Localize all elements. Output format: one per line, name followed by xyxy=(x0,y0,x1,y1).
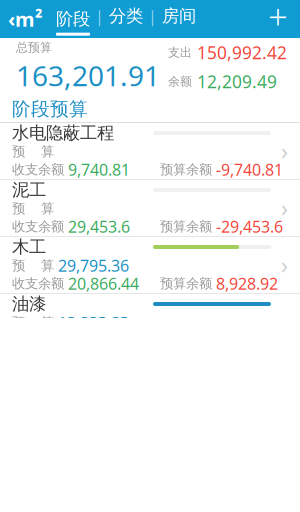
staticText: 预算余额 xyxy=(160,275,212,292)
button[interactable]: 房间 xyxy=(157,5,201,33)
staticText: 预 算 xyxy=(12,143,54,160)
staticText: 预 算 xyxy=(12,200,54,217)
staticText: 9,740.81 xyxy=(64,159,130,180)
staticText: 12,209.49 xyxy=(197,70,277,93)
staticText: 150,992.42 xyxy=(197,41,287,64)
staticText: 收支余额 xyxy=(12,275,64,292)
staticText: 收支余额 xyxy=(12,218,64,235)
staticText: 163,201.91 xyxy=(16,57,160,94)
staticText: › xyxy=(281,193,288,223)
staticText: 分类 xyxy=(109,5,143,27)
staticText: 余额 xyxy=(168,74,192,89)
staticText: 8,928.92 xyxy=(212,273,278,294)
staticText: -9,740.81 xyxy=(212,159,283,180)
button[interactable]: › xyxy=(0,123,300,180)
button[interactable]: 阶段 xyxy=(51,2,95,36)
button[interactable]: Add xyxy=(268,0,300,45)
staticText: 12,823.83 xyxy=(54,312,129,333)
staticText: 油漆 xyxy=(12,293,46,315)
staticText: ‹m² xyxy=(8,6,43,32)
staticText: 20,866.44 xyxy=(64,273,139,294)
staticText: 泥工 xyxy=(12,179,46,201)
staticText: 预算余额 xyxy=(160,161,212,178)
staticText: 木工 xyxy=(12,236,46,258)
button[interactable]: Back xyxy=(0,6,51,32)
staticText: -29,453.6 xyxy=(212,216,283,237)
staticText: 阶段预算 xyxy=(12,97,88,120)
staticText: › xyxy=(281,250,288,280)
staticText: 预算余额 xyxy=(160,218,212,235)
button[interactable]: › xyxy=(0,237,300,294)
staticText: 收支余额 xyxy=(12,161,64,178)
staticText: › xyxy=(281,136,288,166)
staticText: 29,795.36 xyxy=(54,255,129,276)
staticText: 支出 xyxy=(168,45,192,60)
staticText: 29,453.6 xyxy=(64,216,130,237)
staticText: 总预算 xyxy=(16,40,52,55)
button[interactable]: › xyxy=(0,180,300,237)
staticText: 预 算 xyxy=(12,314,54,331)
staticText: 房间 xyxy=(162,5,196,27)
staticText: 预 算 xyxy=(12,257,54,274)
button[interactable]: 分类 xyxy=(104,5,148,33)
button[interactable]: › xyxy=(0,294,300,351)
staticText: + xyxy=(268,0,288,39)
staticText: | xyxy=(95,5,104,27)
staticText: | xyxy=(148,5,157,27)
staticText: 阶段 xyxy=(56,8,90,30)
staticText: 水电隐蔽工程 xyxy=(12,122,114,144)
